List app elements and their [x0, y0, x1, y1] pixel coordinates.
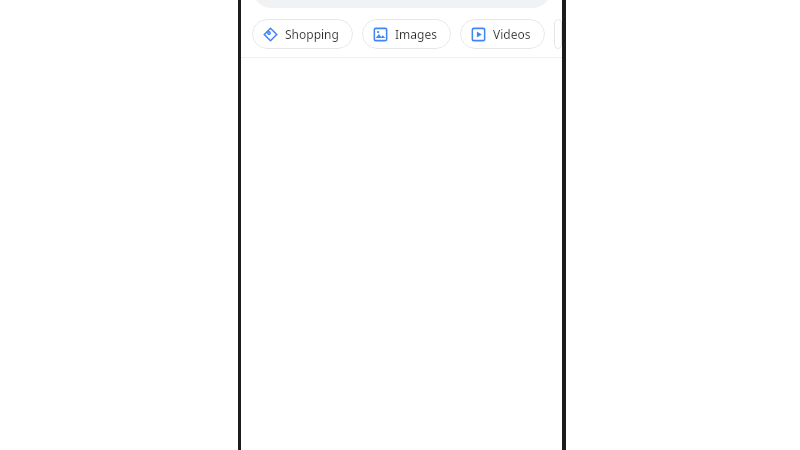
staticText: Videos — [493, 26, 531, 42]
button[interactable]: News — [554, 19, 562, 49]
staticText: Shopping — [285, 26, 339, 42]
button[interactable]: Shopping — [252, 19, 353, 49]
button[interactable]: Images — [362, 19, 451, 49]
button[interactable] — [252, 0, 552, 8]
staticText: Images — [395, 26, 437, 42]
button[interactable]: Videos — [460, 19, 545, 49]
